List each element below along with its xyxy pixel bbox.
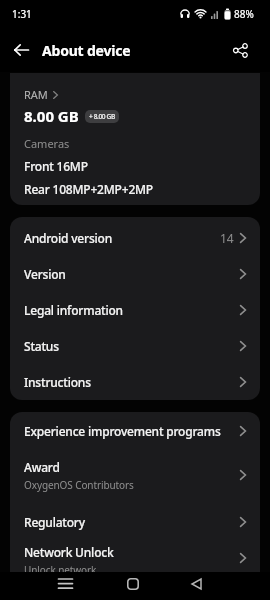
button[interactable]: Legal information [10, 292, 260, 328]
staticText: OxygenOS Contributors [24, 478, 134, 492]
button[interactable]: Version [10, 256, 260, 292]
button[interactable]: Award [10, 450, 260, 500]
staticText: Front 16MP [24, 158, 88, 174]
staticText: RAM [24, 87, 48, 102]
staticText: Android version [24, 230, 113, 246]
button[interactable]: Network Unlock [10, 544, 260, 572]
staticText: + 8.00 GB [89, 112, 115, 121]
staticText: Status [24, 338, 59, 354]
button[interactable]: Status [10, 328, 260, 364]
staticText: Instructions [24, 374, 91, 390]
button[interactable] [14, 36, 42, 64]
staticText: 8.00 GB [24, 106, 79, 126]
button[interactable] [183, 572, 209, 596]
staticText: Regulatory [24, 514, 85, 530]
button[interactable] [52, 572, 78, 596]
button[interactable] [227, 37, 253, 63]
staticText: Experience improvement programs [24, 423, 221, 439]
staticText: Award [24, 459, 60, 475]
staticText: Network Unlock [24, 544, 114, 560]
button[interactable] [120, 572, 146, 596]
staticText: 88% [234, 7, 254, 21]
staticText: Version [24, 266, 66, 282]
staticText: 1:31 [12, 7, 32, 21]
button[interactable]: Android version [10, 220, 260, 256]
staticText: About device [42, 41, 131, 60]
button[interactable]: Experience improvement programs [10, 412, 260, 450]
staticText: Unlock network [24, 563, 97, 572]
button[interactable]: Instructions [10, 364, 260, 400]
button[interactable]: RAM [24, 87, 246, 102]
staticText: 14 [220, 230, 234, 246]
button[interactable]: Regulatory [10, 500, 260, 544]
staticText: Legal information [24, 302, 123, 318]
staticText: Rear 108MP+2MP+2MP [24, 181, 153, 197]
staticText: Cameras [24, 136, 70, 151]
